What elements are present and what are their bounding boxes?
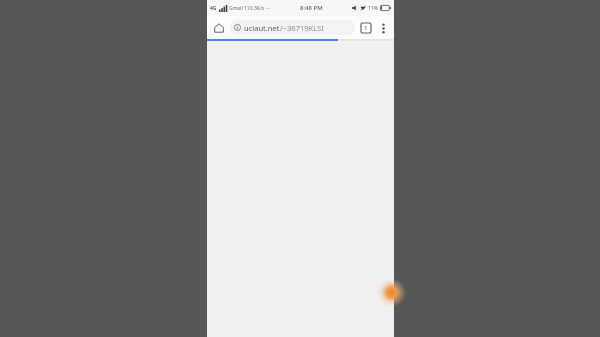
staticText: /~36719KLSI [280,23,324,33]
button[interactable]: Tabs, 1 open [357,19,375,37]
staticText: 1 [364,24,368,32]
staticText: 11% [368,5,378,12]
staticText: 8:48 PM [300,4,323,12]
button[interactable]: Download [378,277,400,307]
staticText: 4G [210,5,217,12]
staticText: uclaut.net [244,23,280,33]
button[interactable]: uclaut.net [230,20,355,35]
staticText: ··· [266,5,271,12]
button[interactable]: Home [210,19,228,37]
button[interactable]: More options [375,20,391,36]
staticText: Gmail 110.3K/s [229,5,265,12]
